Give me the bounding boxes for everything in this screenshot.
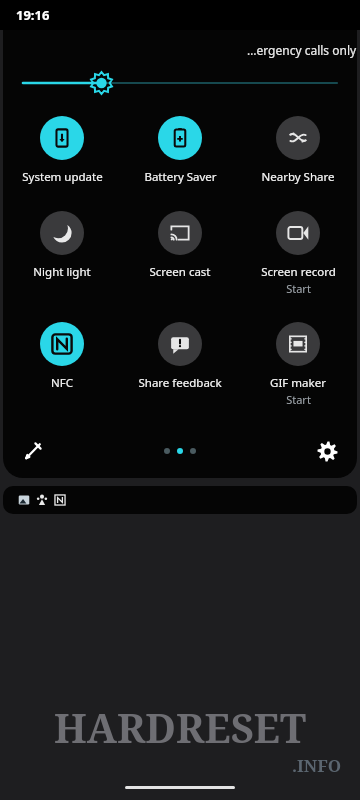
button[interactable]: Night light xyxy=(3,211,121,280)
staticText: NFC xyxy=(51,375,73,391)
button[interactable]: Edit tiles xyxy=(11,429,55,473)
button[interactable]: Share feedback xyxy=(121,322,239,391)
button[interactable]: Nearby Share xyxy=(239,116,357,185)
button[interactable]: GIF maker xyxy=(239,322,357,407)
button[interactable]: Screen cast xyxy=(121,211,239,280)
button[interactable] xyxy=(3,486,357,514)
staticText: Screen cast xyxy=(149,264,211,280)
button[interactable]: System update xyxy=(3,116,121,185)
button[interactable]: Battery Saver xyxy=(121,116,239,185)
button[interactable]: Screen record xyxy=(239,211,357,296)
staticText: Share feedback xyxy=(138,375,222,391)
staticText: System update xyxy=(22,169,103,185)
button[interactable]: Settings xyxy=(305,429,349,473)
staticText: .INFO xyxy=(292,754,342,777)
staticText: Nearby Share xyxy=(261,169,335,185)
staticText: Screen record xyxy=(261,264,336,280)
staticText: …ergency calls only xyxy=(247,42,357,58)
staticText: 19:16 xyxy=(16,6,50,24)
staticText: Start xyxy=(286,392,311,407)
staticText: GIF maker xyxy=(270,375,326,391)
button[interactable]: Brightness xyxy=(3,70,357,96)
staticText: HARDRESET xyxy=(54,700,307,754)
staticText: Battery Saver xyxy=(144,169,217,185)
staticText: Night light xyxy=(33,264,91,280)
staticText: Start xyxy=(286,281,311,296)
button[interactable]: NFC xyxy=(3,322,121,391)
